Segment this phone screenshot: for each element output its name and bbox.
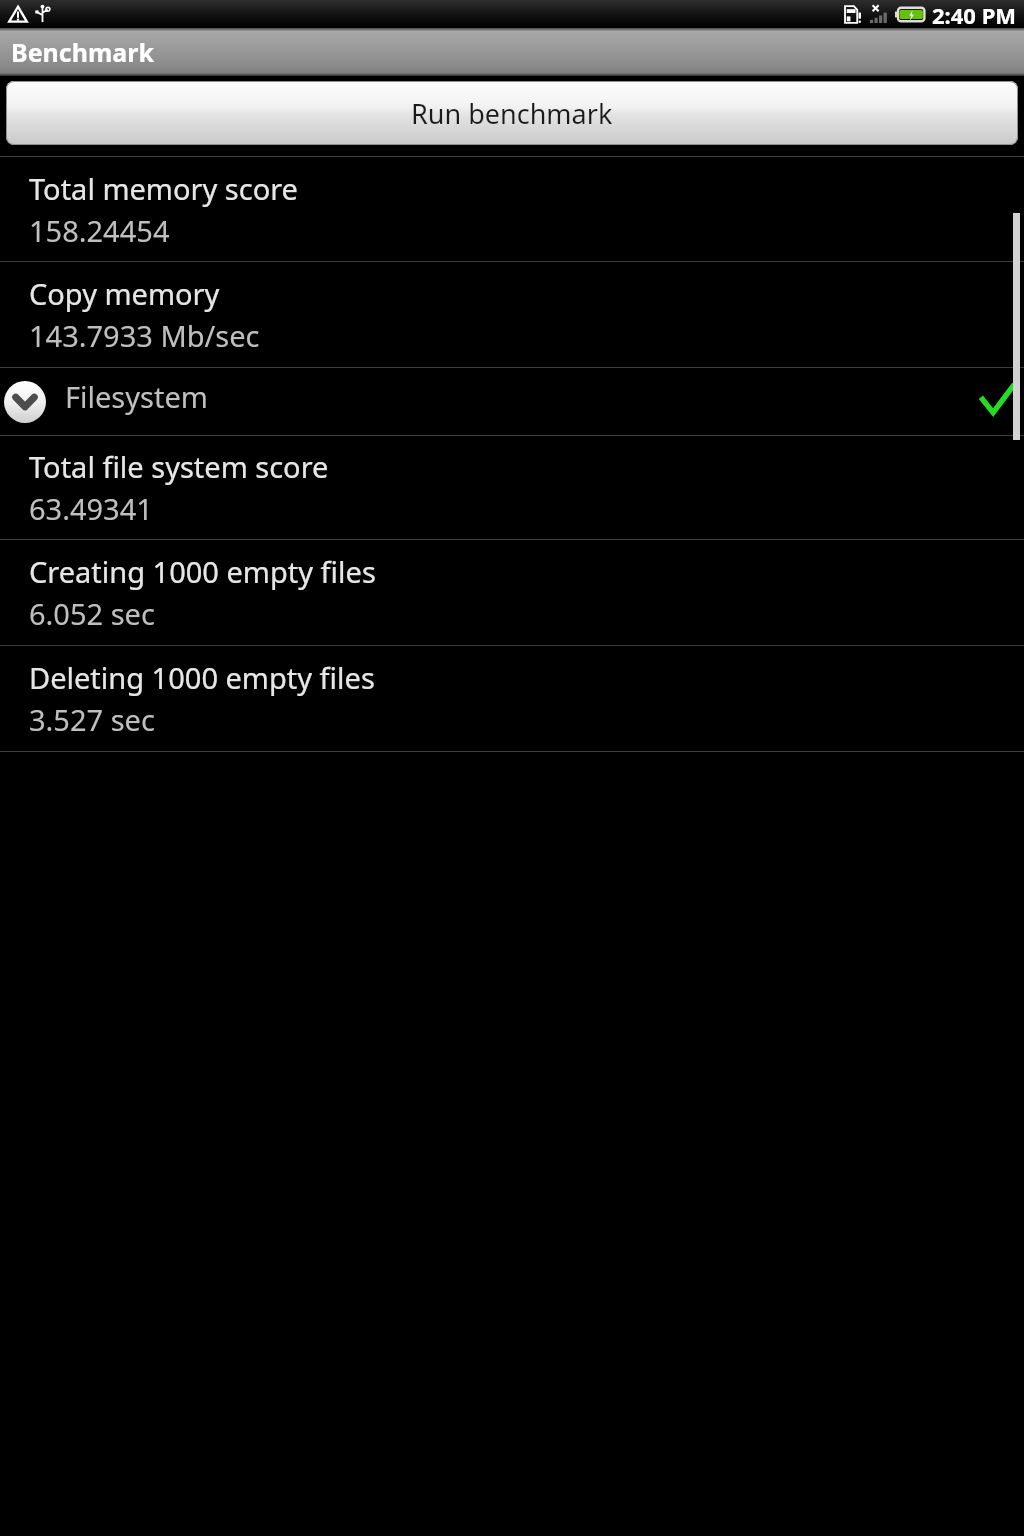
other: Collapse Filesystem section xyxy=(4,381,46,423)
staticText: Run benchmark xyxy=(411,95,613,132)
button[interactable]: Deleting 1000 empty files xyxy=(0,646,1024,751)
staticText: Filesystem xyxy=(65,377,208,416)
button[interactable]: Run benchmark xyxy=(6,81,1018,145)
staticText: 2:40 PM xyxy=(932,0,1017,28)
staticText: 158.24454 xyxy=(29,211,170,250)
staticText: Total file system score xyxy=(29,447,329,486)
staticText: Benchmark xyxy=(11,35,154,69)
button[interactable]: Copy memory xyxy=(0,262,1024,367)
staticText: Copy memory xyxy=(29,274,220,313)
staticText: 6.052 sec xyxy=(29,594,155,633)
staticText: Creating 1000 empty files xyxy=(29,552,376,591)
staticText: Total memory score xyxy=(29,169,298,208)
button[interactable]: Total memory score xyxy=(0,157,1024,261)
staticText: 63.49341 xyxy=(29,489,153,528)
staticText: Deleting 1000 empty files xyxy=(29,658,375,697)
button[interactable]: Collapse Filesystem section xyxy=(0,368,1024,435)
button[interactable]: Total file system score xyxy=(0,436,1024,539)
button[interactable]: Creating 1000 empty files xyxy=(0,540,1024,645)
staticText: 3.527 sec xyxy=(29,700,155,739)
staticText: 143.7933 Mb/sec xyxy=(29,316,260,355)
